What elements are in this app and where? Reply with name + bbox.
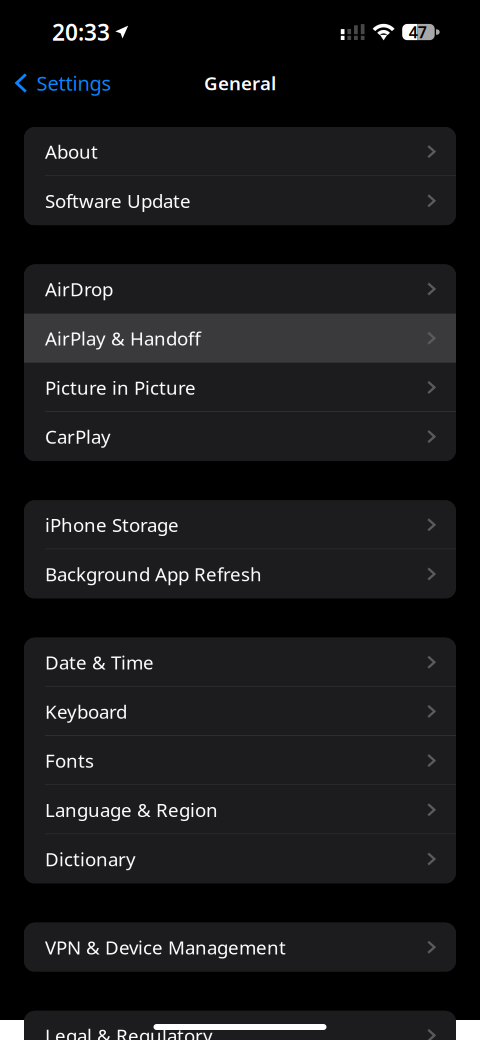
staticText: Settings: [36, 70, 111, 96]
staticText: AirDrop: [45, 277, 113, 301]
button[interactable]: Software Update: [24, 176, 456, 225]
staticText: 20:33: [52, 17, 110, 47]
staticText: General: [204, 71, 276, 95]
staticText: CarPlay: [45, 424, 111, 449]
button[interactable]: iPhone Storage: [24, 500, 456, 549]
staticText: AirPlay & Handoff: [45, 326, 201, 351]
staticText: Keyboard: [45, 699, 127, 724]
staticText: VPN & Device Management: [45, 935, 286, 960]
button[interactable]: AirPlay & Handoff: [24, 314, 456, 363]
staticText: Fonts: [45, 748, 94, 773]
staticText: Dictionary: [45, 847, 136, 871]
staticText: iPhone Storage: [45, 512, 179, 537]
button[interactable]: VPN & Device Management: [24, 923, 456, 972]
staticText: Date & Time: [45, 650, 154, 675]
staticText: Legal & Regulatory: [45, 1023, 213, 1040]
button[interactable]: Keyboard: [24, 687, 456, 736]
button[interactable]: Language & Region: [24, 785, 456, 834]
staticText: Software Update: [45, 188, 191, 213]
staticText: Language & Region: [45, 797, 218, 822]
button[interactable]: Fonts: [24, 736, 456, 785]
button[interactable]: AirDrop: [24, 264, 456, 314]
button[interactable]: Settings: [0, 53, 121, 113]
button[interactable]: Background App Refresh: [24, 549, 456, 599]
button[interactable]: Dictionary: [24, 834, 456, 884]
staticText: Picture in Picture: [45, 375, 196, 400]
button[interactable]: CarPlay: [24, 412, 456, 461]
button[interactable]: Date & Time: [24, 638, 456, 687]
staticText: Background App Refresh: [45, 562, 262, 586]
staticText: 47: [409, 21, 427, 43]
button[interactable]: Picture in Picture: [24, 363, 456, 412]
staticText: About: [45, 139, 98, 164]
button[interactable]: About: [24, 127, 456, 176]
button[interactable]: Legal & Regulatory: [24, 1011, 456, 1040]
